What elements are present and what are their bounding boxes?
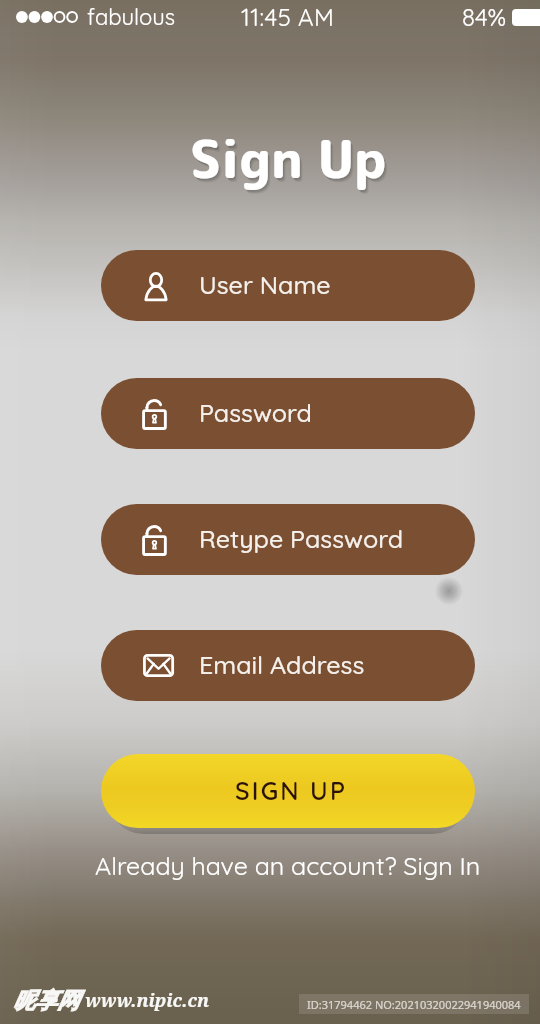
staticText: User Name — [199, 269, 331, 300]
staticText: Retype Password — [199, 523, 404, 554]
staticText: Email Address — [199, 649, 365, 680]
staticText: www.nipic.cn — [85, 988, 210, 1013]
staticText: Sign Up — [190, 122, 387, 195]
other: Lock — [139, 523, 173, 557]
staticText: Sign Up — [191, 124, 388, 197]
staticText: 昵享网 — [13, 987, 79, 1015]
button[interactable]: SIGN UP — [101, 754, 475, 828]
staticText: Sign Up — [193, 126, 390, 199]
button[interactable]: Lock — [101, 378, 475, 449]
staticText: Sign Up — [192, 125, 389, 198]
staticText: Password — [199, 397, 312, 428]
other: Email — [139, 649, 173, 683]
other: Person — [139, 269, 173, 303]
button[interactable]: Email — [101, 630, 475, 701]
button[interactable]: Lock — [101, 504, 475, 575]
staticText: fabulous — [87, 3, 176, 31]
staticText: ID:31794462 NO:20210320022941940084 — [307, 997, 521, 1012]
staticText: 84% — [462, 2, 507, 32]
other: Lock — [139, 397, 173, 431]
staticText: 11:45 AM — [241, 2, 335, 32]
button[interactable]: Person — [101, 250, 475, 321]
staticText: SIGN UP — [235, 775, 348, 806]
button[interactable]: Already have an account? Sign In — [95, 850, 481, 881]
